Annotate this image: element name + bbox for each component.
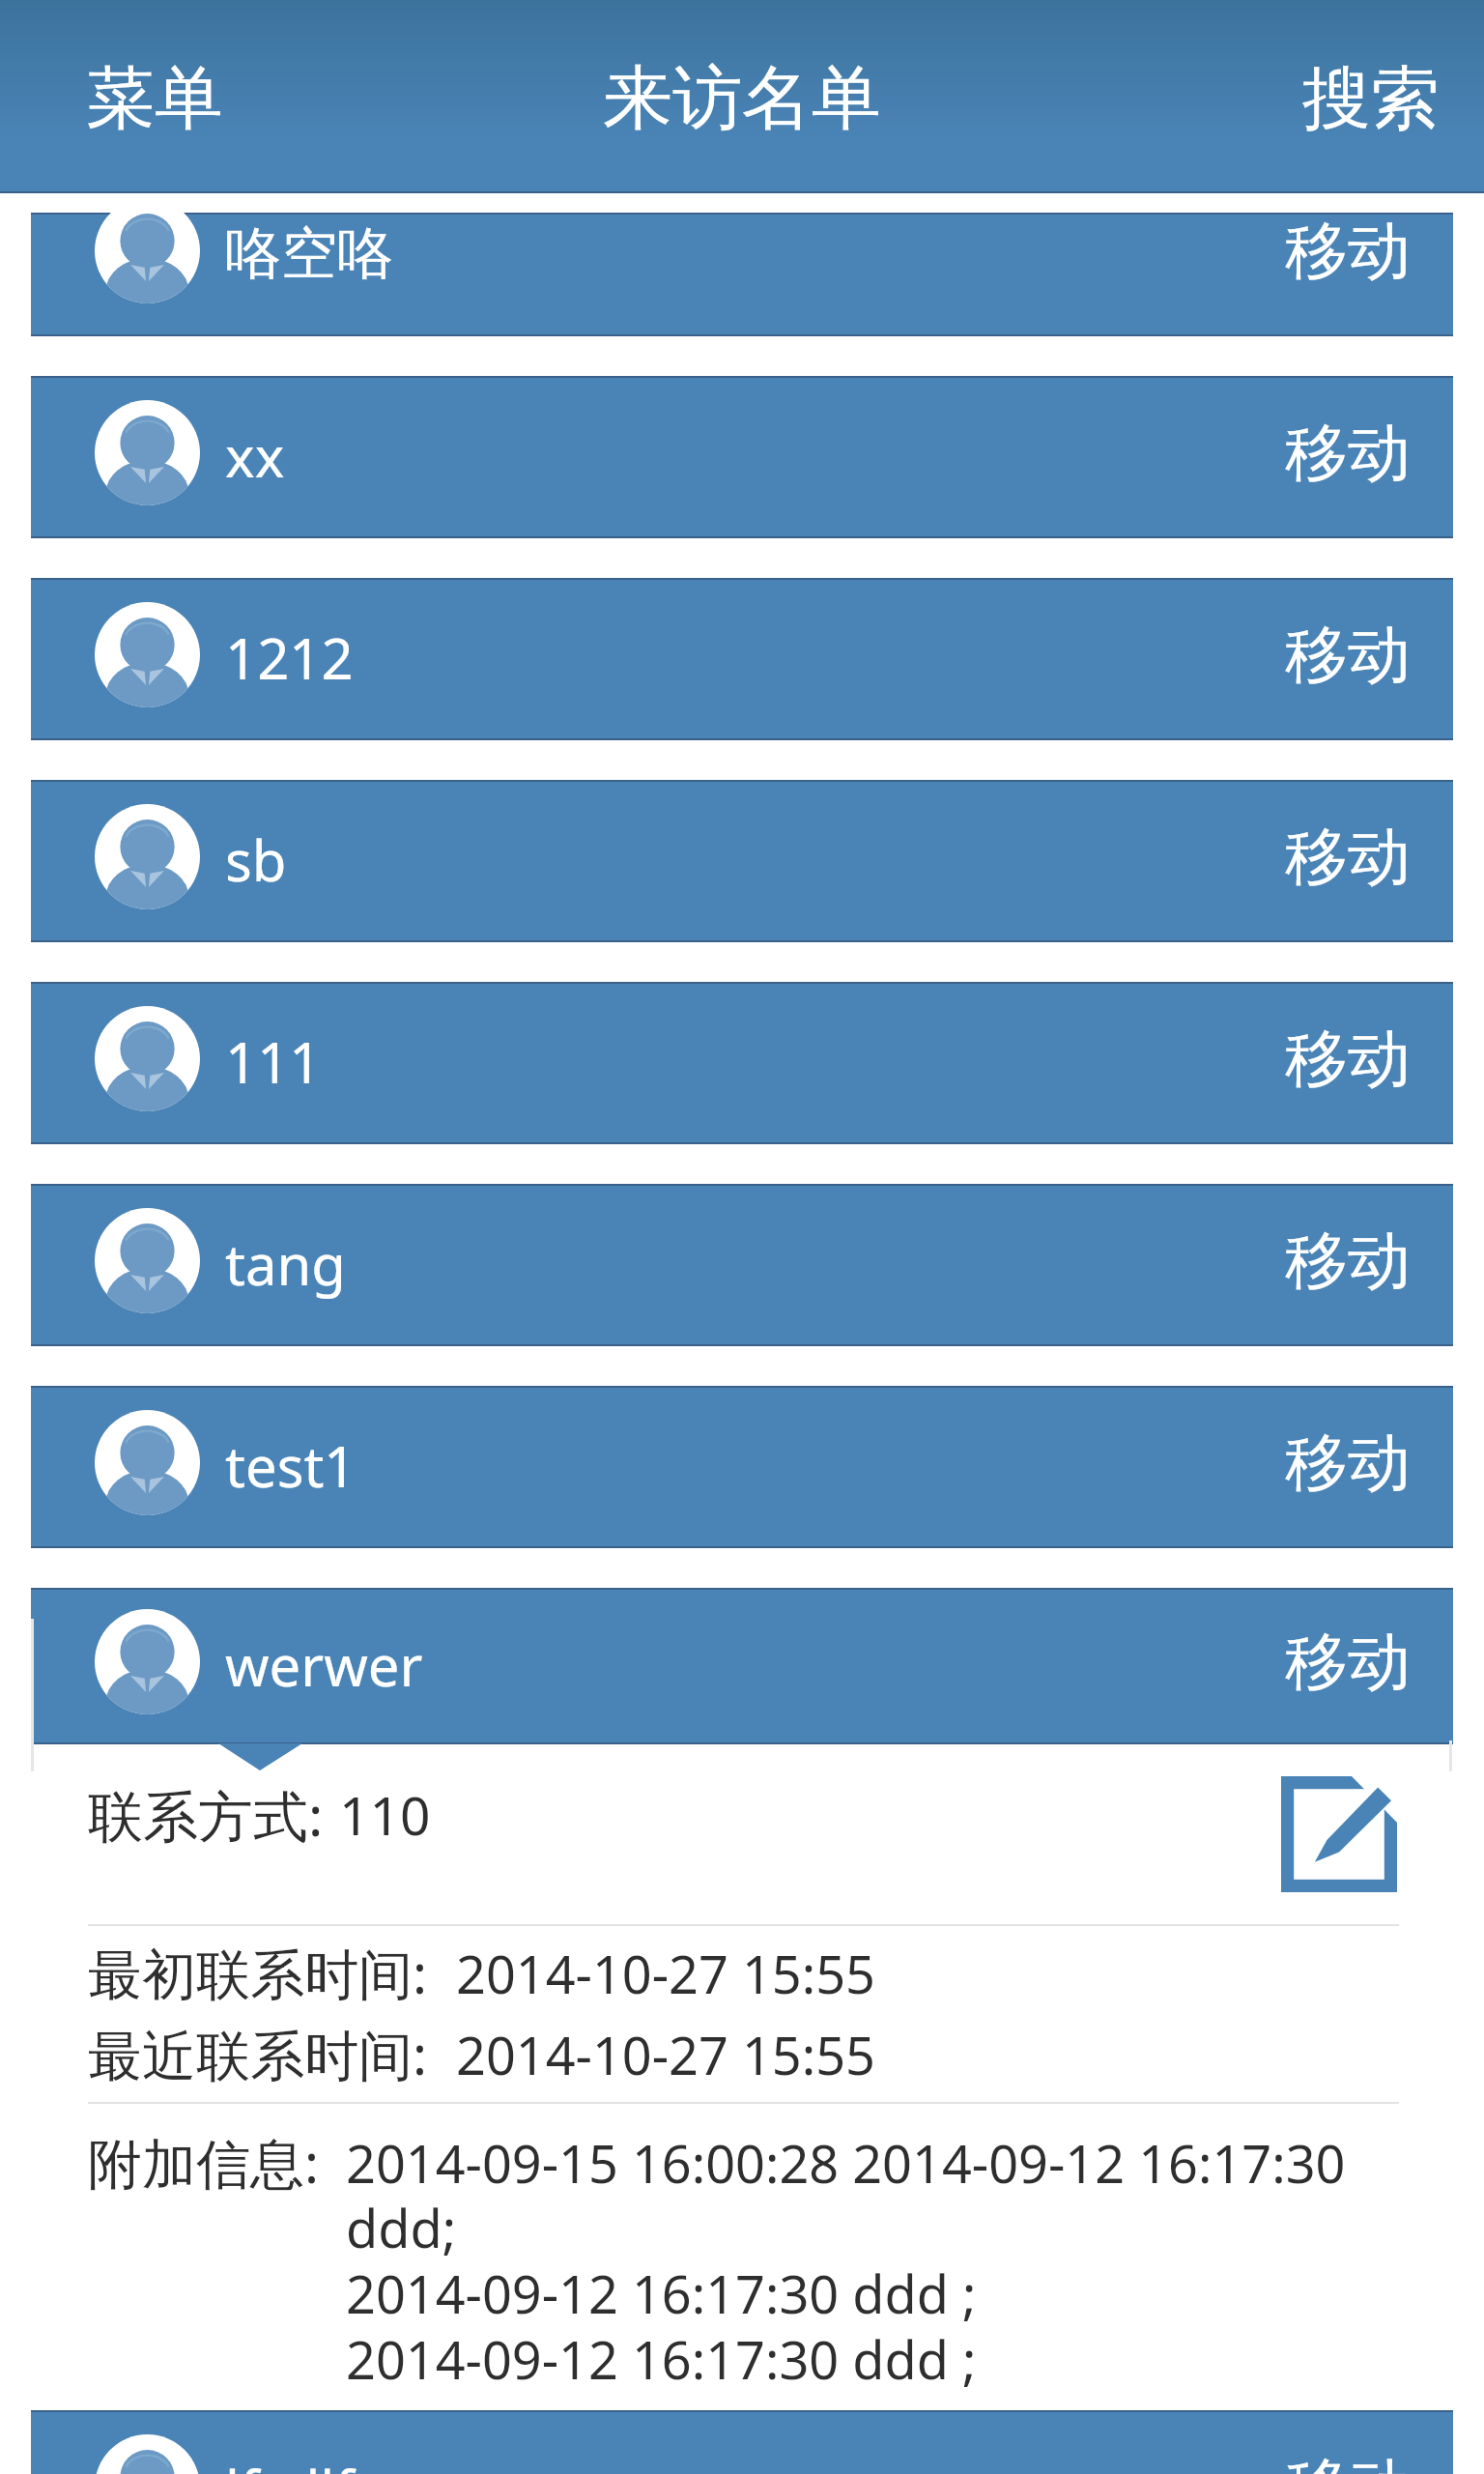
staticText: 移动: [1285, 213, 1411, 291]
staticText: 咯空咯: [225, 218, 393, 289]
staticText: 移动: [1285, 818, 1411, 897]
staticText: 2014-09-15 16:00:28 2014-09-12 16:17:30 …: [346, 2127, 1351, 2395]
staticText: 移动: [1285, 616, 1411, 695]
button[interactable]: xx: [31, 376, 1453, 538]
button[interactable]: werwer: [31, 1588, 1453, 1744]
button[interactable]: Edit: [1281, 1776, 1397, 1892]
staticText: 移动: [1285, 1020, 1411, 1099]
staticText: test1: [225, 1427, 357, 1504]
button[interactable]: 菜单: [86, 56, 223, 142]
button[interactable]: 搜索: [1302, 56, 1440, 142]
button[interactable]: test1: [31, 1386, 1453, 1548]
staticText: werwer: [225, 1626, 423, 1703]
staticText: xx: [225, 417, 285, 494]
button[interactable]: tang: [31, 1184, 1453, 1346]
staticText: 最近联系时间:: [88, 2017, 428, 2090]
staticText: 最初联系时间:: [88, 1936, 428, 2009]
staticText: 111: [225, 1023, 322, 1100]
staticText: 移动: [1285, 2448, 1411, 2474]
staticText: 来访名单: [603, 55, 881, 143]
staticText: 移动: [1285, 414, 1411, 493]
staticText: 移动: [1285, 1623, 1411, 1702]
staticText: 移动: [1285, 1424, 1411, 1503]
staticText: 搜索: [1302, 56, 1440, 142]
staticText: 2014-10-27 15:55: [456, 1938, 875, 2009]
button[interactable]: lfsdlf: [31, 2410, 1453, 2474]
staticText: 1212: [225, 619, 354, 696]
staticText: 联系方式:: [88, 1777, 324, 1853]
staticText: tang: [225, 1225, 346, 1302]
staticText: sb: [225, 821, 287, 898]
button[interactable]: 咯空咯: [31, 213, 1453, 336]
button[interactable]: 1212: [31, 578, 1453, 740]
button[interactable]: sb: [31, 780, 1453, 942]
staticText: lfsdlf: [225, 2452, 355, 2474]
staticText: 2014-10-27 15:55: [456, 2019, 875, 2090]
staticText: 附加信息:: [88, 2125, 320, 2199]
button[interactable]: 111: [31, 982, 1453, 1144]
staticText: 移动: [1285, 1222, 1411, 1301]
staticText: 110: [339, 1778, 431, 1851]
staticText: 菜单: [86, 56, 223, 142]
